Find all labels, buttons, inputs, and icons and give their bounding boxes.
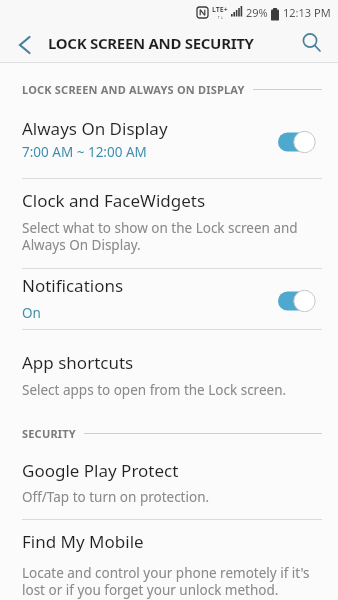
- staticText: Locate and control your phone remotely i…: [22, 564, 310, 599]
- button[interactable]: Google Play Protect: [0, 459, 338, 506]
- staticText: Always On Display: [22, 117, 168, 140]
- staticText: On: [22, 304, 41, 322]
- staticText: LOCK SCREEN AND ALWAYS ON DISPLAY: [22, 82, 245, 97]
- staticText: App shortcuts: [22, 351, 134, 374]
- button[interactable]: Clock and FaceWidgets: [0, 189, 338, 254]
- staticText: Select apps to open from the Lock screen…: [22, 381, 287, 399]
- staticText: Find My Mobile: [22, 530, 144, 553]
- staticText: Notifications: [22, 274, 124, 297]
- button[interactable]: Find My Mobile: [0, 530, 338, 599]
- staticText: ↑↓: [217, 15, 224, 20]
- staticText: 29%: [246, 5, 268, 20]
- staticText: 7:00 AM ~ 12:00 AM: [22, 143, 147, 161]
- staticText: Google Play Protect: [22, 459, 179, 482]
- button[interactable]: App shortcuts: [0, 351, 338, 399]
- staticText: Select what to show on the Lock screen a…: [22, 219, 298, 254]
- staticText: Clock and FaceWidgets: [22, 189, 206, 212]
- staticText: SECURITY: [22, 426, 76, 441]
- button[interactable]: Always On Display: [0, 117, 338, 161]
- staticText: Off/Tap to turn on protection.: [22, 488, 210, 506]
- staticText: LOCK SCREEN AND SECURITY: [48, 33, 292, 53]
- button[interactable]: [0, 24, 48, 62]
- staticText: LTE+: [212, 5, 228, 15]
- staticText: 12:13 PM: [283, 5, 331, 20]
- button[interactable]: [292, 24, 338, 62]
- button[interactable]: Notifications: [0, 274, 338, 322]
